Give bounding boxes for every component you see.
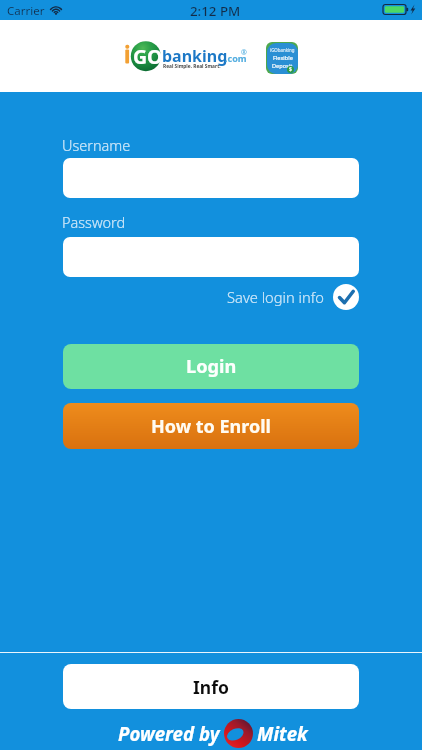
staticText: How to Enroll xyxy=(151,414,271,439)
staticText: ® xyxy=(241,48,247,58)
staticText: Username xyxy=(62,135,131,155)
button[interactable]: Login xyxy=(63,344,359,389)
staticText: Save login info xyxy=(227,287,324,307)
staticText: Deposit xyxy=(272,62,293,70)
staticText: Carrier xyxy=(7,3,45,19)
button[interactable]: Username field xyxy=(63,158,359,198)
staticText: banking xyxy=(162,45,228,67)
button[interactable]: Password field xyxy=(63,237,359,277)
staticText: Real Simple. Real Smart. xyxy=(163,63,221,70)
staticText: Info xyxy=(193,675,229,699)
staticText: 2:12 PM xyxy=(190,2,241,20)
staticText: Login xyxy=(186,354,237,379)
staticText: Powered by xyxy=(118,721,220,746)
staticText: Password xyxy=(62,212,126,232)
staticText: iGObanking xyxy=(270,47,295,53)
button[interactable]: iGObanking Flexible Deposit xyxy=(266,42,298,74)
staticText: GO xyxy=(133,43,163,70)
button[interactable]: Save login info xyxy=(227,283,359,310)
staticText: Flexible xyxy=(273,54,293,62)
staticText: Mitek xyxy=(257,721,308,746)
button[interactable]: How to Enroll xyxy=(63,403,359,449)
staticText: $ xyxy=(289,66,292,73)
staticText: .com xyxy=(225,52,247,64)
button[interactable]: Info xyxy=(63,664,359,709)
